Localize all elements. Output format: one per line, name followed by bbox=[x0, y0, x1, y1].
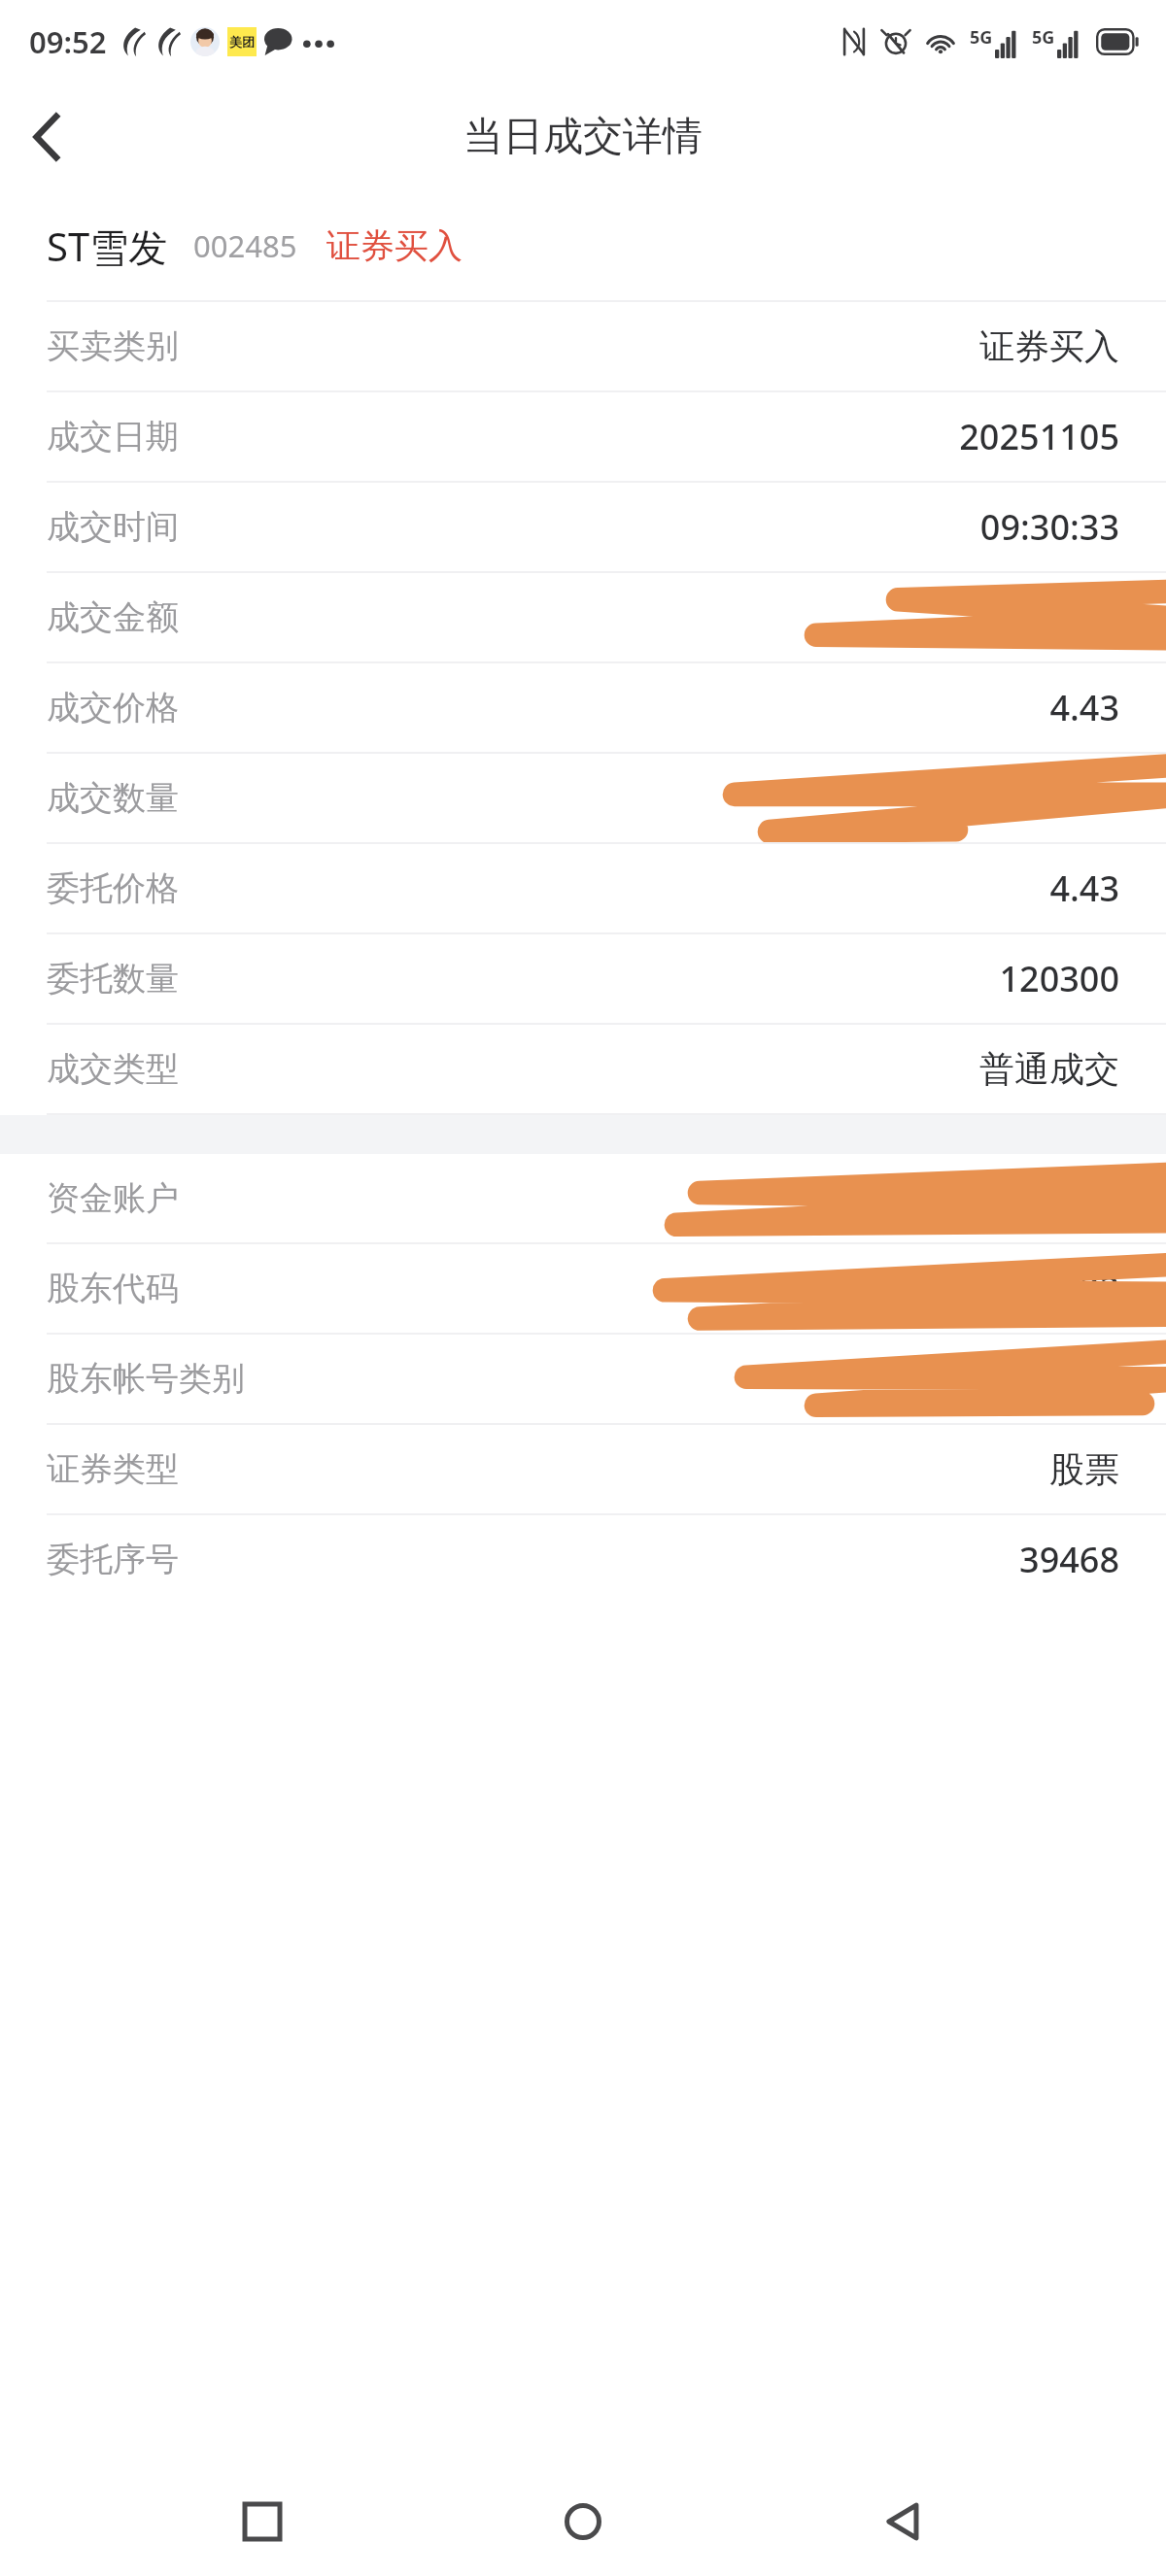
staticText: 20251105 bbox=[959, 413, 1119, 460]
button[interactable]: 成交类型 bbox=[0, 1025, 1166, 1113]
button[interactable]: 委托序号 bbox=[0, 1515, 1166, 1604]
button[interactable]: 成交数量 bbox=[0, 754, 1166, 842]
staticText: 成交日期 bbox=[47, 416, 179, 458]
staticText: 成交时间 bbox=[47, 506, 179, 548]
staticText: 成交数量 bbox=[47, 777, 179, 819]
staticText: 5G bbox=[970, 25, 993, 50]
staticText: 120300 bbox=[999, 955, 1119, 1002]
button[interactable]: 买卖类别 bbox=[0, 302, 1166, 390]
button[interactable]: Back bbox=[0, 90, 93, 184]
button[interactable]: 成交价格 bbox=[0, 663, 1166, 752]
staticText: 1203 bbox=[1039, 774, 1119, 822]
button[interactable]: 股东帐号类别 bbox=[0, 1335, 1166, 1423]
staticText: 4.43 bbox=[1049, 864, 1119, 912]
button[interactable]: 委托价格 bbox=[0, 844, 1166, 932]
staticText: 09:52 bbox=[29, 21, 107, 62]
staticText: 09:30:33 bbox=[979, 503, 1119, 551]
staticText: 委托价格 bbox=[47, 867, 179, 909]
staticText: 买卖类别 bbox=[47, 325, 179, 367]
button[interactable]: Home bbox=[525, 2467, 641, 2576]
staticText: 022 bbox=[1059, 1265, 1119, 1312]
staticText: 当日成交详情 bbox=[463, 112, 703, 162]
staticText: 证券类型 bbox=[47, 1448, 179, 1490]
staticText: 美团 bbox=[229, 34, 255, 50]
staticText: ST雪发 bbox=[47, 220, 168, 273]
staticText: 证券买入 bbox=[326, 224, 463, 267]
staticText: 成交类型 bbox=[47, 1048, 179, 1090]
staticText: 股东代码 bbox=[47, 1268, 179, 1309]
button[interactable]: 资金账户 bbox=[0, 1154, 1166, 1242]
staticText: 4.43 bbox=[1049, 684, 1119, 731]
staticText: 成交价格 bbox=[47, 687, 179, 729]
button[interactable]: 成交金额 bbox=[0, 573, 1166, 661]
button[interactable]: 证券类型 bbox=[0, 1425, 1166, 1513]
button[interactable]: ST雪发 bbox=[0, 191, 1166, 300]
button[interactable]: Back bbox=[845, 2467, 962, 2576]
staticText: 5G bbox=[1032, 25, 1055, 50]
staticText: 39468 bbox=[1019, 1536, 1119, 1583]
staticText: 普通成交 bbox=[979, 1047, 1119, 1091]
staticText: 资金账户 bbox=[47, 1177, 179, 1219]
button[interactable]: 成交时间 bbox=[0, 483, 1166, 571]
button[interactable]: 股东代码 bbox=[0, 1244, 1166, 1333]
staticText: 股东帐号类别 bbox=[47, 1358, 245, 1400]
button[interactable]: Recent apps bbox=[204, 2467, 321, 2576]
staticText: 委托序号 bbox=[47, 1539, 179, 1580]
staticText: 证券买入 bbox=[979, 324, 1119, 368]
button[interactable]: 成交日期 bbox=[0, 392, 1166, 481]
staticText: 委托数量 bbox=[47, 958, 179, 1000]
staticText: 成交金额 bbox=[47, 596, 179, 638]
staticText: 002485 bbox=[193, 225, 297, 266]
button[interactable]: 委托数量 bbox=[0, 934, 1166, 1023]
staticText: 股票 bbox=[1049, 1447, 1119, 1491]
